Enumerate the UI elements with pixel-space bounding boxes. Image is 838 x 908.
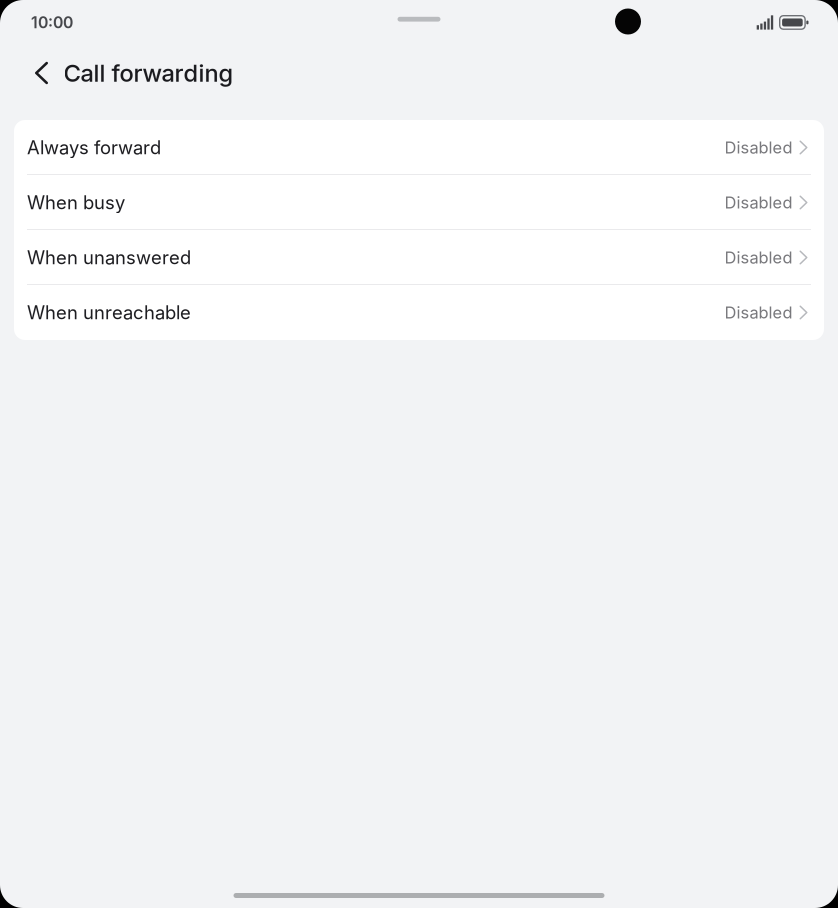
button[interactable]: Always forward — [14, 120, 824, 175]
button[interactable]: Back — [26, 45, 56, 101]
button[interactable]: When unreachable — [14, 285, 824, 340]
button[interactable]: When unanswered — [14, 230, 824, 285]
staticText: Always forward — [27, 136, 161, 159]
button[interactable]: When busy — [14, 175, 824, 230]
staticText: Disabled — [724, 248, 792, 267]
staticText: 10:00 — [31, 13, 73, 32]
staticText: Disabled — [724, 193, 792, 212]
staticText: Disabled — [724, 138, 792, 157]
staticText: When busy — [27, 191, 125, 214]
staticText: When unanswered — [27, 246, 191, 269]
staticText: Call forwarding — [63, 59, 233, 87]
staticText: When unreachable — [27, 301, 191, 324]
staticText: Disabled — [724, 303, 792, 322]
